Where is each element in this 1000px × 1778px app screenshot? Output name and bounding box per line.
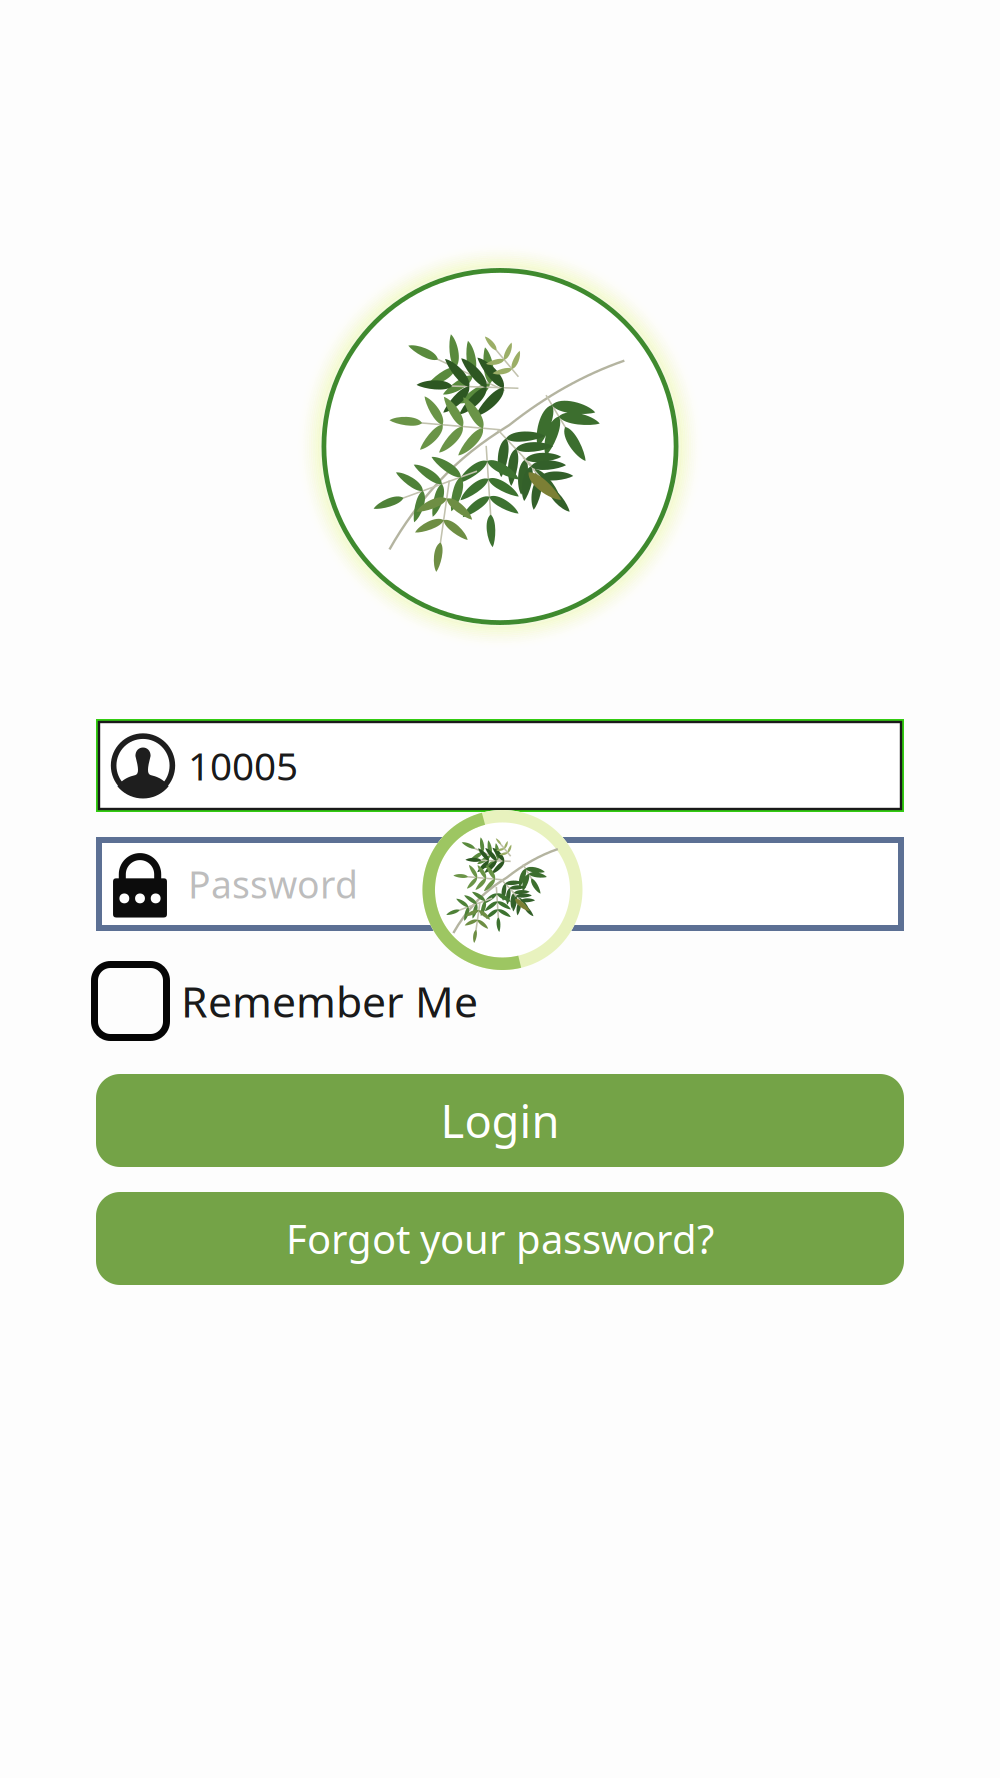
button[interactable]: Forgot your password? [96, 1192, 904, 1285]
button[interactable]: 10005 [96, 719, 904, 812]
staticText: Remember Me [181, 972, 478, 1030]
staticText: Login [440, 1090, 559, 1151]
staticText: Password [188, 859, 358, 909]
staticText: 10005 [188, 739, 298, 792]
button[interactable]: Password [96, 837, 904, 931]
staticText: Forgot your password? [286, 1211, 714, 1266]
button[interactable]: Login [96, 1074, 904, 1167]
button[interactable]: Remember Me [91, 961, 909, 1041]
